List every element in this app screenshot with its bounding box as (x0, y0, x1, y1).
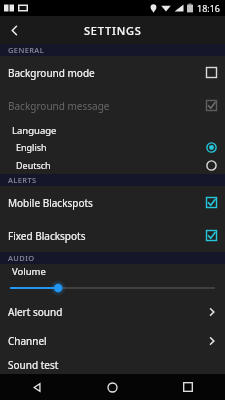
staticText: 18:16 (197, 2, 221, 14)
button[interactable]: Volume slider (0, 279, 225, 297)
staticText: GENERAL (8, 45, 45, 55)
staticText: Mobile Blackspots (8, 196, 206, 210)
staticText: AUDIO (8, 253, 35, 263)
button[interactable]: English (0, 138, 225, 156)
staticText: Deutsch (16, 159, 206, 171)
button[interactable]: Back (0, 16, 28, 44)
staticText: Sound test (8, 358, 217, 372)
staticText: English (16, 141, 206, 153)
button[interactable]: Background mode (0, 56, 225, 89)
staticText: Background mode (8, 66, 206, 80)
staticText: SETTINGS (84, 23, 142, 38)
staticText: Fixed Blackspots (8, 229, 206, 243)
button[interactable]: Home (75, 374, 150, 400)
button[interactable]: Channel (0, 326, 225, 355)
staticText: Background message (8, 99, 206, 113)
button[interactable]: Recent apps (150, 374, 225, 400)
button[interactable]: Mobile Blackspots (0, 186, 225, 219)
staticText: Alert sound (8, 305, 207, 319)
staticText: Language (12, 124, 57, 137)
button[interactable]: Fixed Blackspots (0, 219, 225, 252)
button[interactable]: Deutsch (0, 156, 225, 174)
button[interactable]: Background message (0, 89, 225, 122)
staticText: Volume (12, 265, 46, 278)
button[interactable]: Sound test (0, 355, 225, 374)
staticText: Channel (8, 334, 207, 348)
button[interactable]: Back (0, 374, 75, 400)
button[interactable]: Alert sound (0, 297, 225, 326)
staticText: ALERTS (8, 175, 37, 185)
